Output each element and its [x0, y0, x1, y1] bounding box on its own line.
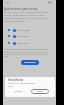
staticText: Puedes cambiar esta opcion cuando quiera…: [4, 48, 53, 57]
staticText: Chat Mobile: [17, 29, 30, 32]
staticText: Aplicaciones para enviar: [4, 7, 38, 11]
staticText: Este es un mensaje de texto corto: [8, 82, 36, 87]
staticText: Drive Share: [17, 42, 29, 45]
staticText: Cancelar: [14, 90, 23, 93]
staticText: Aceptar: [36, 90, 44, 93]
staticText: Hola Mundo: [8, 78, 24, 82]
button[interactable]: Cancelar: [12, 89, 25, 94]
staticText: Desinstalar: [24, 61, 36, 64]
staticText: ▲ ▮: [48, 1, 52, 4]
staticText: Cloud Sync: [17, 35, 29, 38]
button[interactable]: Aceptar: [31, 89, 49, 94]
button[interactable]: Desinstalar: [21, 60, 39, 65]
button[interactable]: Chat Mobile: [3, 28, 56, 34]
button[interactable]: Cloud Sync: [3, 34, 56, 40]
staticText: 9:41: [5, 1, 10, 4]
button[interactable]: Drive Share: [3, 41, 56, 47]
staticText: Las aplicaciones que aparecen abajo pued…: [4, 11, 53, 23]
